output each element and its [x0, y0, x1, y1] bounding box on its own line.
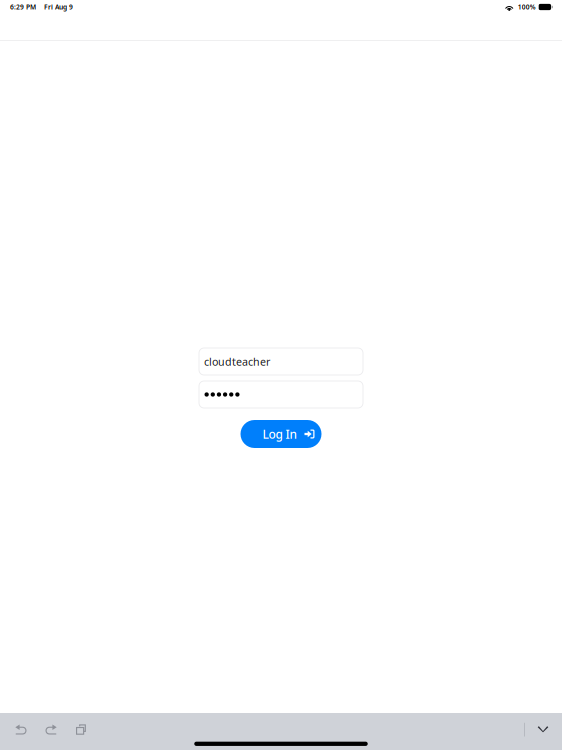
staticText: 6:29 PM — [10, 3, 36, 11]
staticText: Log In — [262, 426, 297, 442]
staticText: Fri Aug 9 — [44, 3, 73, 11]
button[interactable]: cloudteacher — [199, 348, 363, 375]
button[interactable]: Copy — [66, 720, 96, 739]
staticText: 100% — [518, 3, 536, 11]
button[interactable] — [199, 381, 363, 408]
staticText: cloudteacher — [204, 354, 270, 369]
button[interactable]: Redo — [36, 720, 66, 739]
button[interactable]: Undo — [6, 720, 36, 739]
button[interactable]: Log In — [240, 420, 321, 448]
button[interactable]: Hide Keyboard — [525, 720, 561, 739]
